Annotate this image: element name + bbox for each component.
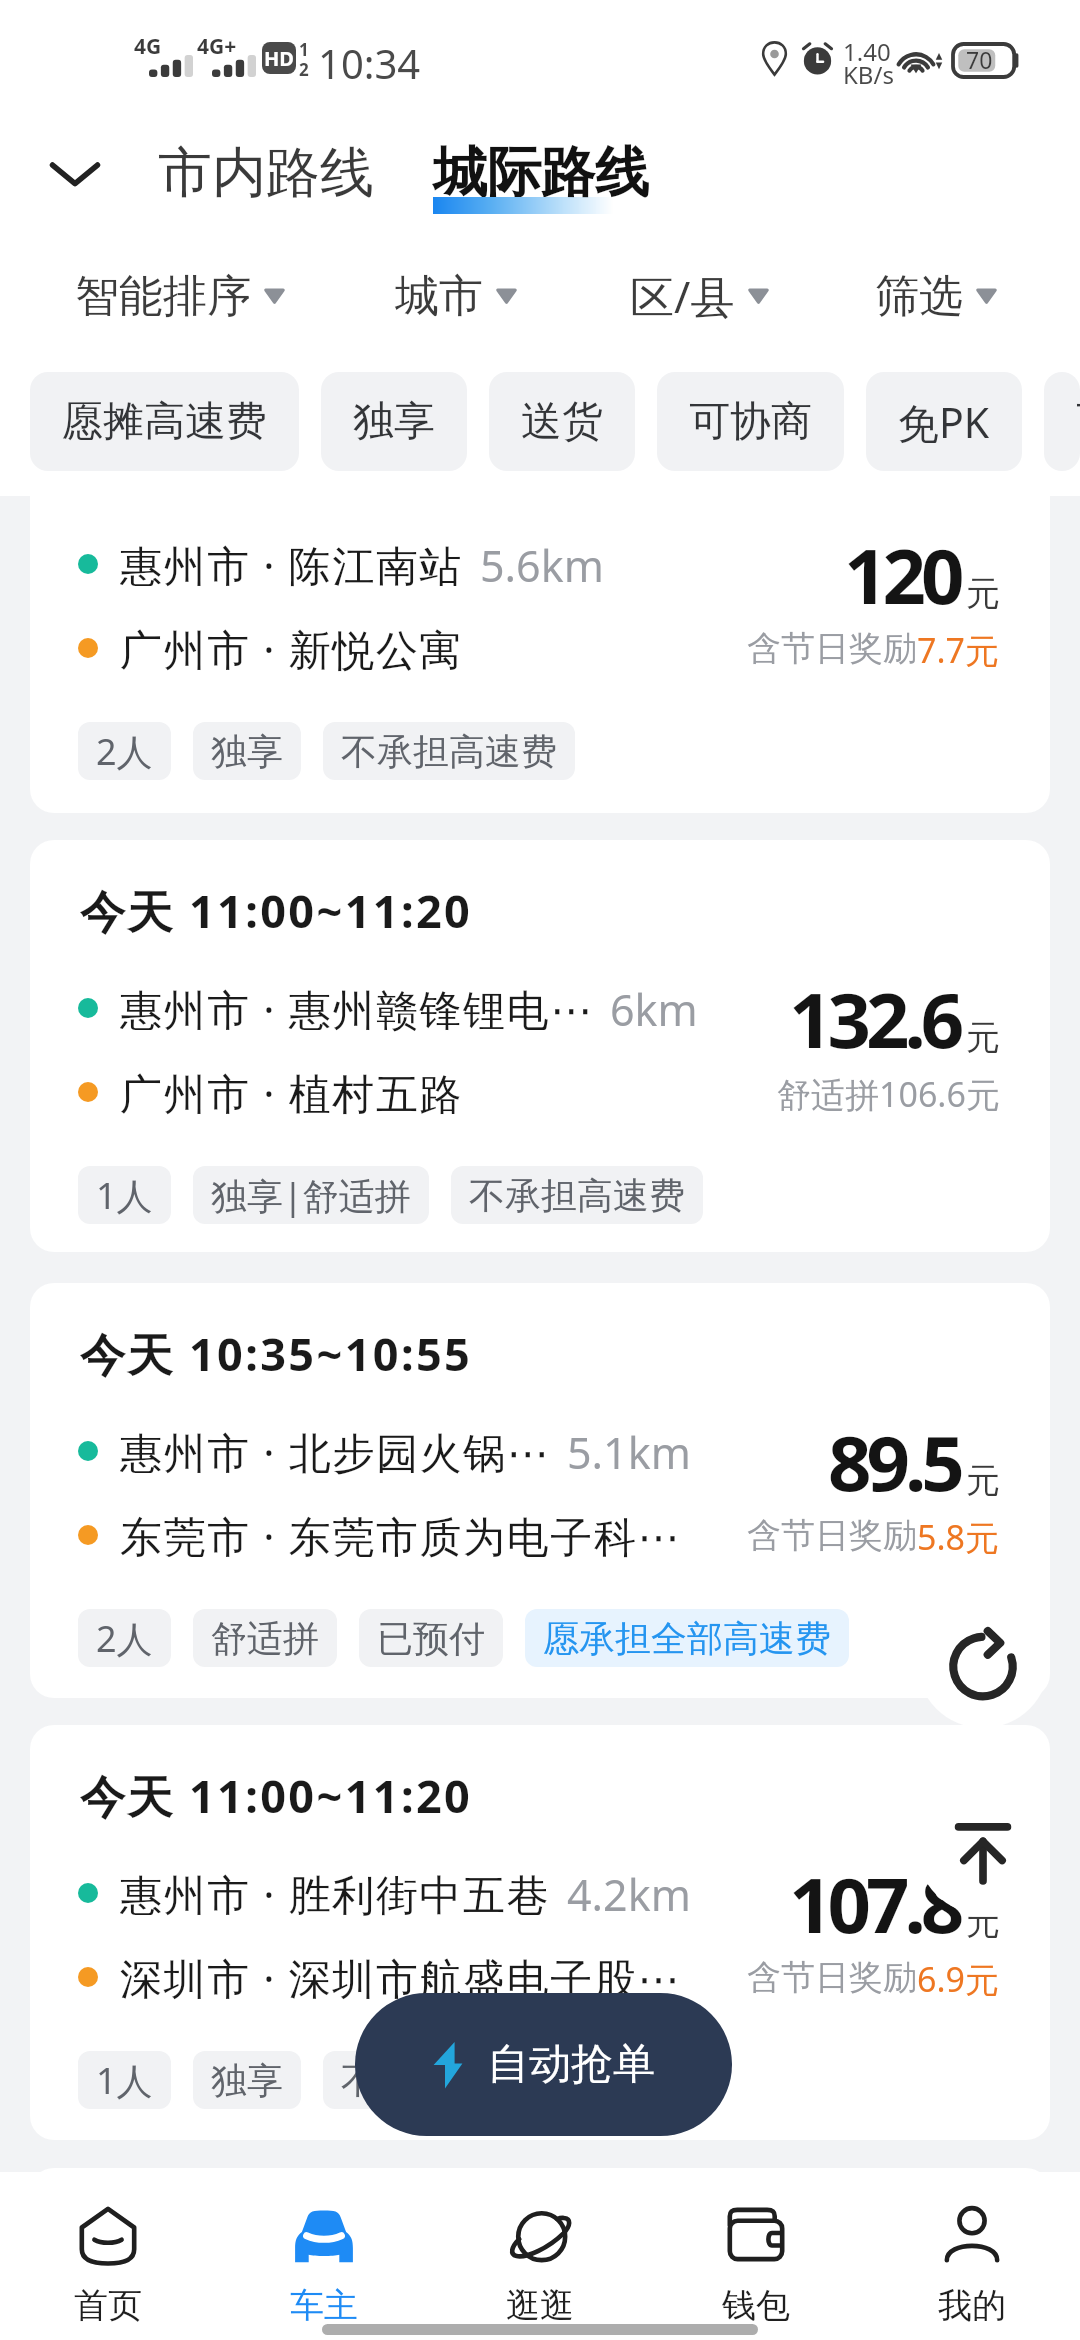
staticText: 市内路线 [158, 139, 374, 207]
button[interactable]: 不承担高速费 [323, 722, 575, 780]
button[interactable]: 城市 [395, 248, 516, 344]
staticText: 逛逛 [506, 2284, 574, 2327]
staticText: 深圳市 · 深圳市航盛电子股⋯ [120, 1949, 682, 2005]
button[interactable]: 1人 [78, 2051, 171, 2109]
staticText: 愿摊高速费 [62, 396, 267, 448]
staticText: 送货 [521, 396, 603, 448]
button[interactable]: 独享 [193, 2051, 301, 2109]
staticText: 不承担高速费 [341, 2058, 557, 2103]
staticText: 愿承担全部高速费 [543, 1616, 831, 1661]
staticText: 今天 10:35~10:55 [80, 1323, 473, 1384]
staticText: 车主 [290, 2284, 358, 2327]
button[interactable]: 愿承担全部高速费 [525, 1609, 849, 1667]
staticText: 4.2km [567, 1865, 691, 1921]
button[interactable]: 逛逛 [432, 2202, 648, 2327]
staticText: 独享 [211, 729, 283, 774]
staticText: HD [264, 45, 294, 72]
staticText: 今天 11:00~11:20 [80, 1765, 473, 1826]
button[interactable]: 不承担高速费 [451, 1166, 703, 1224]
staticText: 元 [966, 1016, 1000, 1059]
staticText: 惠州市 · 北步园火锅⋯ [120, 1423, 551, 1479]
staticText: 1 [299, 38, 309, 61]
button[interactable]: 惠州市 · 陈江南站 [30, 404, 1050, 813]
button[interactable]: 独享 [193, 722, 301, 780]
staticText: 独享 [211, 2058, 283, 2103]
staticText: 10:34 [318, 36, 421, 90]
button[interactable]: 舒适拼 [193, 1609, 337, 1667]
button[interactable]: 今天 10:35~10:55 [30, 1283, 1050, 1698]
staticText: 107.8 [789, 1852, 960, 1956]
button[interactable]: 车主 [216, 2202, 432, 2327]
staticText: 4G+ [197, 32, 237, 61]
staticText: 5.8元 [917, 1514, 1000, 1560]
staticText: 2人 [96, 1614, 153, 1663]
staticText: 舒适拼106.6元 [777, 1071, 1000, 1117]
staticText: 1人 [96, 1171, 153, 1220]
staticText: 可协商 [689, 396, 812, 448]
staticText: 2 [299, 58, 309, 81]
staticText: 钱包 [722, 2284, 790, 2327]
staticText: 1.40 [843, 35, 891, 68]
button[interactable]: 独享|舒适拼 [193, 1166, 429, 1224]
button[interactable]: 筛选 [875, 248, 996, 344]
button[interactable]: Back to top [917, 1782, 1049, 1914]
button[interactable]: 可协商 [657, 372, 844, 471]
staticText: 已预付 [377, 1616, 485, 1661]
staticText: 7.7元 [917, 627, 1000, 673]
staticText: 5.1km [567, 1423, 691, 1479]
staticText: 独享|舒适拼 [211, 1171, 411, 1220]
staticText: 89.5 [828, 1410, 960, 1514]
button[interactable]: 城际路线 [427, 139, 655, 224]
button[interactable]: 今天 11:00~11:20 [30, 840, 1050, 1252]
button[interactable]: 愿摊高速费 [30, 372, 299, 471]
staticText: 免PK [898, 394, 990, 450]
staticText: 元 [966, 1459, 1000, 1502]
staticText: 区/县 [630, 266, 735, 326]
button[interactable]: Refresh [917, 1596, 1049, 1728]
staticText: 首页 [74, 2284, 142, 2327]
staticText: 元 [966, 1901, 1000, 1944]
button[interactable]: 免PK [866, 372, 1022, 471]
staticText: 城际路线 [433, 139, 649, 207]
staticText: 6km [610, 980, 698, 1036]
staticText: 含节日奖励 [747, 1514, 917, 1557]
button[interactable]: 已预付 [359, 1609, 503, 1667]
staticText: 1人 [96, 2056, 153, 2105]
staticText: 独享 [353, 396, 435, 448]
button[interactable]: 独享 [321, 372, 467, 471]
staticText: 城市 [395, 269, 483, 324]
staticText: 惠州市 · 陈江南站 [120, 536, 464, 592]
button[interactable]: Expand [42, 140, 108, 206]
button[interactable]: 智能排序 [75, 248, 284, 344]
staticText: KB/s [843, 58, 894, 91]
staticText: 我的 [938, 2284, 1006, 2327]
staticText: 不承担高速费 [469, 1173, 685, 1218]
staticText: 自动抢单 [487, 2038, 655, 2091]
staticText: 70 [966, 44, 993, 75]
staticText: 惠州市 · 惠州赣锋锂电⋯ [120, 980, 594, 1036]
button[interactable]: 不承担高速费 [323, 2051, 575, 2109]
staticText: 6.9元 [917, 1956, 1000, 2002]
button[interactable]: 送货 [489, 372, 635, 471]
button[interactable]: 区/县 [630, 248, 768, 344]
staticText: 5.6km [480, 536, 604, 592]
staticText: 132.6 [789, 967, 960, 1071]
button[interactable]: 今天 11:00~11:20 [30, 1725, 1050, 2140]
button[interactable]: 2人 [78, 722, 171, 780]
staticText: 今天 11:00~11:20 [80, 880, 473, 941]
button[interactable]: 自动抢单 [355, 1993, 732, 2136]
staticText: 广州市 · 新悦公寓 [120, 620, 464, 676]
button[interactable]: 可 [1044, 372, 1080, 471]
button[interactable]: 2人 [78, 1609, 171, 1667]
button[interactable]: 市内路线 [152, 139, 380, 207]
staticText: 不承担高速费 [341, 729, 557, 774]
staticText: 含节日奖励 [747, 1956, 917, 1999]
button[interactable]: 首页 [0, 2202, 216, 2327]
button[interactable]: 我的 [864, 2202, 1080, 2327]
staticText: 舒适拼 [211, 1616, 319, 1661]
button[interactable]: 1人 [78, 1166, 171, 1224]
staticText: 惠州市 · 胜利街中五巷 [120, 1865, 551, 1921]
staticText: 含节日奖励 [747, 627, 917, 670]
button[interactable]: 钱包 [648, 2202, 864, 2327]
staticText: 4G [134, 32, 162, 61]
